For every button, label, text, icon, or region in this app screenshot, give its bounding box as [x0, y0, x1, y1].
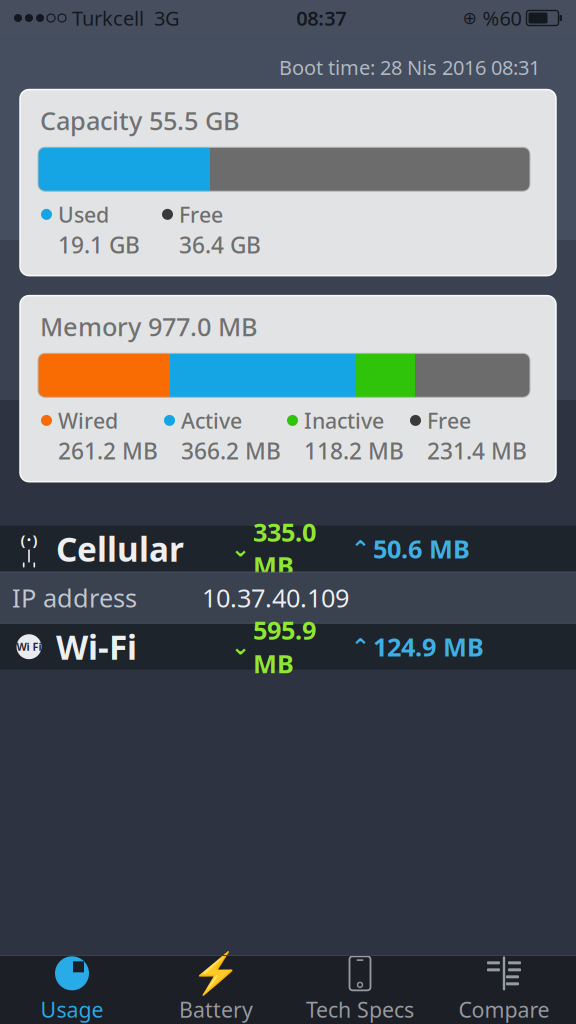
staticText: Compare — [458, 995, 549, 1024]
button[interactable]: Compare — [432, 955, 576, 1024]
staticText: ⊕ — [462, 8, 477, 28]
staticText: 335.0 MB — [253, 515, 316, 582]
staticText: Active — [181, 406, 242, 435]
staticText: Battery — [179, 995, 253, 1024]
button[interactable]: Wi Fi — [0, 624, 576, 670]
staticText: Wi Fi — [16, 640, 41, 654]
staticText: 261.2 MB — [58, 436, 158, 466]
staticText: Wired — [58, 406, 118, 435]
staticText: 118.2 MB — [304, 436, 404, 466]
staticText: ⚡ — [191, 950, 241, 996]
staticText: Used — [58, 200, 109, 228]
staticText: Usage — [40, 995, 103, 1024]
staticText: ) — [32, 530, 37, 549]
staticText: Boot time: 28 Nis 2016 08:31 — [279, 54, 540, 81]
staticText: %60 — [482, 5, 521, 31]
staticText: 3G — [154, 5, 180, 31]
staticText: 08:37 — [296, 5, 346, 31]
staticText: 19.1 GB — [58, 229, 140, 260]
button[interactable]: Tech Specs — [288, 955, 432, 1024]
button[interactable]: ( — [0, 526, 576, 572]
staticText: Free — [427, 406, 471, 435]
staticText: Wi-Fi — [56, 625, 137, 669]
staticText: ( — [20, 530, 25, 549]
staticText: Tech Specs — [306, 995, 414, 1024]
staticText: Capacity 55.5 GB — [40, 104, 240, 137]
staticText: 231.4 MB — [427, 436, 527, 466]
staticText: 10.37.40.109 — [202, 581, 349, 614]
staticText: 124.9 MB — [373, 630, 484, 663]
staticText: 36.4 GB — [179, 229, 261, 260]
staticText: 595.9 MB — [253, 613, 316, 680]
staticText: ⌄ — [231, 634, 250, 659]
staticText: ⌃ — [351, 536, 370, 561]
staticText: ⌄ — [231, 536, 250, 561]
staticText: 50.6 MB — [373, 532, 470, 565]
button[interactable]: ⚡ — [144, 955, 288, 1024]
staticText: 366.2 MB — [181, 436, 281, 466]
staticText: Cellular — [56, 527, 184, 571]
staticText: IP address — [12, 581, 137, 614]
staticText: Free — [179, 200, 223, 228]
staticText: Memory 977.0 MB — [40, 310, 258, 343]
button[interactable]: Usage — [0, 955, 144, 1024]
staticText: Turkcell — [72, 5, 144, 31]
staticText: ⌃ — [351, 634, 370, 659]
button[interactable]: IP address — [0, 573, 576, 623]
staticText: Inactive — [304, 406, 384, 435]
